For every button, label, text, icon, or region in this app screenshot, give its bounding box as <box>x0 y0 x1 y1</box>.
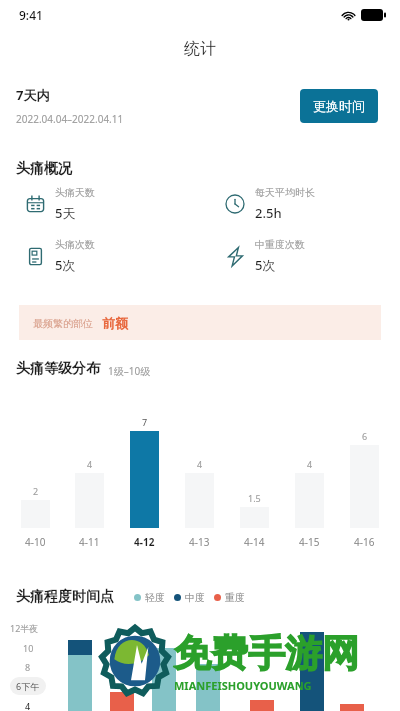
staticText: 轻度 <box>145 591 165 604</box>
staticText: 6 <box>362 430 368 442</box>
staticText: 每天平均时长 <box>255 186 315 199</box>
staticText: 2 <box>33 485 39 497</box>
staticText: 10 <box>23 642 34 654</box>
staticText: 最频繁的部位 <box>33 317 93 330</box>
staticText: 中度 <box>185 591 205 604</box>
button[interactable]: 最频繁的部位 <box>19 305 381 340</box>
staticText: 2022.04.04–2022.04.11 <box>16 112 124 126</box>
button[interactable]: 2 <box>8 415 62 549</box>
button[interactable]: 轻度 <box>134 591 165 604</box>
other: Headache count <box>24 245 46 267</box>
staticText: 4 <box>87 458 93 470</box>
button[interactable]: 重度 <box>214 591 245 604</box>
staticText: 中重度次数 <box>255 238 305 251</box>
staticText: 8 <box>25 661 31 673</box>
button[interactable]: 更换时间 <box>300 89 378 123</box>
staticText: 头痛概况 <box>16 160 72 178</box>
staticText: 5次 <box>55 256 76 274</box>
staticText: 4-11 <box>79 535 100 549</box>
button[interactable]: Headache days <box>0 186 200 222</box>
staticText: 头痛程度时间点 <box>16 588 114 606</box>
staticText: 4-14 <box>244 535 265 549</box>
staticText: 7天内 <box>16 86 50 104</box>
staticText: 5次 <box>255 256 276 274</box>
staticText: 更换时间 <box>313 98 365 114</box>
staticText: 免费手游网 <box>174 630 359 677</box>
other: Headache days <box>24 193 46 215</box>
staticText: 4 <box>197 458 203 470</box>
staticText: 统计 <box>184 39 216 59</box>
other: Severe count <box>224 245 246 267</box>
button[interactable]: 1.5 <box>227 415 282 549</box>
staticText: 12半夜 <box>10 622 39 634</box>
button[interactable]: 6 <box>337 415 392 549</box>
button[interactable]: Severe count <box>200 238 400 274</box>
staticText: 前额 <box>102 315 128 331</box>
staticText: 头痛天数 <box>55 186 95 199</box>
button[interactable]: 4 <box>282 415 337 549</box>
staticText: 7 <box>142 416 148 428</box>
button[interactable]: 中度 <box>174 591 205 604</box>
staticText: MIANFEISHOUYOUWANG <box>174 678 312 693</box>
staticText: 头痛次数 <box>55 238 95 251</box>
staticText: 4-12 <box>134 535 155 549</box>
staticText: 4-13 <box>189 535 210 549</box>
button[interactable]: Headache count <box>0 238 200 274</box>
staticText: 4 <box>307 458 313 470</box>
button[interactable]: 7 <box>117 415 172 549</box>
staticText: 4-16 <box>354 535 375 549</box>
staticText: 1.5 <box>248 492 261 504</box>
button[interactable]: 4 <box>62 415 117 549</box>
button[interactable]: 4 <box>172 415 227 549</box>
staticText: 9:41 <box>19 7 43 23</box>
staticText: 6下午 <box>16 680 40 692</box>
staticText: 1级–10级 <box>108 364 151 378</box>
staticText: 重度 <box>225 591 245 604</box>
staticText: 5天 <box>55 204 76 222</box>
other: Average duration <box>224 193 246 215</box>
staticText: 2.5h <box>255 204 282 222</box>
staticText: 4 <box>25 700 31 711</box>
staticText: 头痛等级分布 <box>16 360 100 378</box>
staticText: 4-15 <box>299 535 320 549</box>
button[interactable]: Average duration <box>200 186 400 222</box>
staticText: 4-10 <box>25 535 46 549</box>
